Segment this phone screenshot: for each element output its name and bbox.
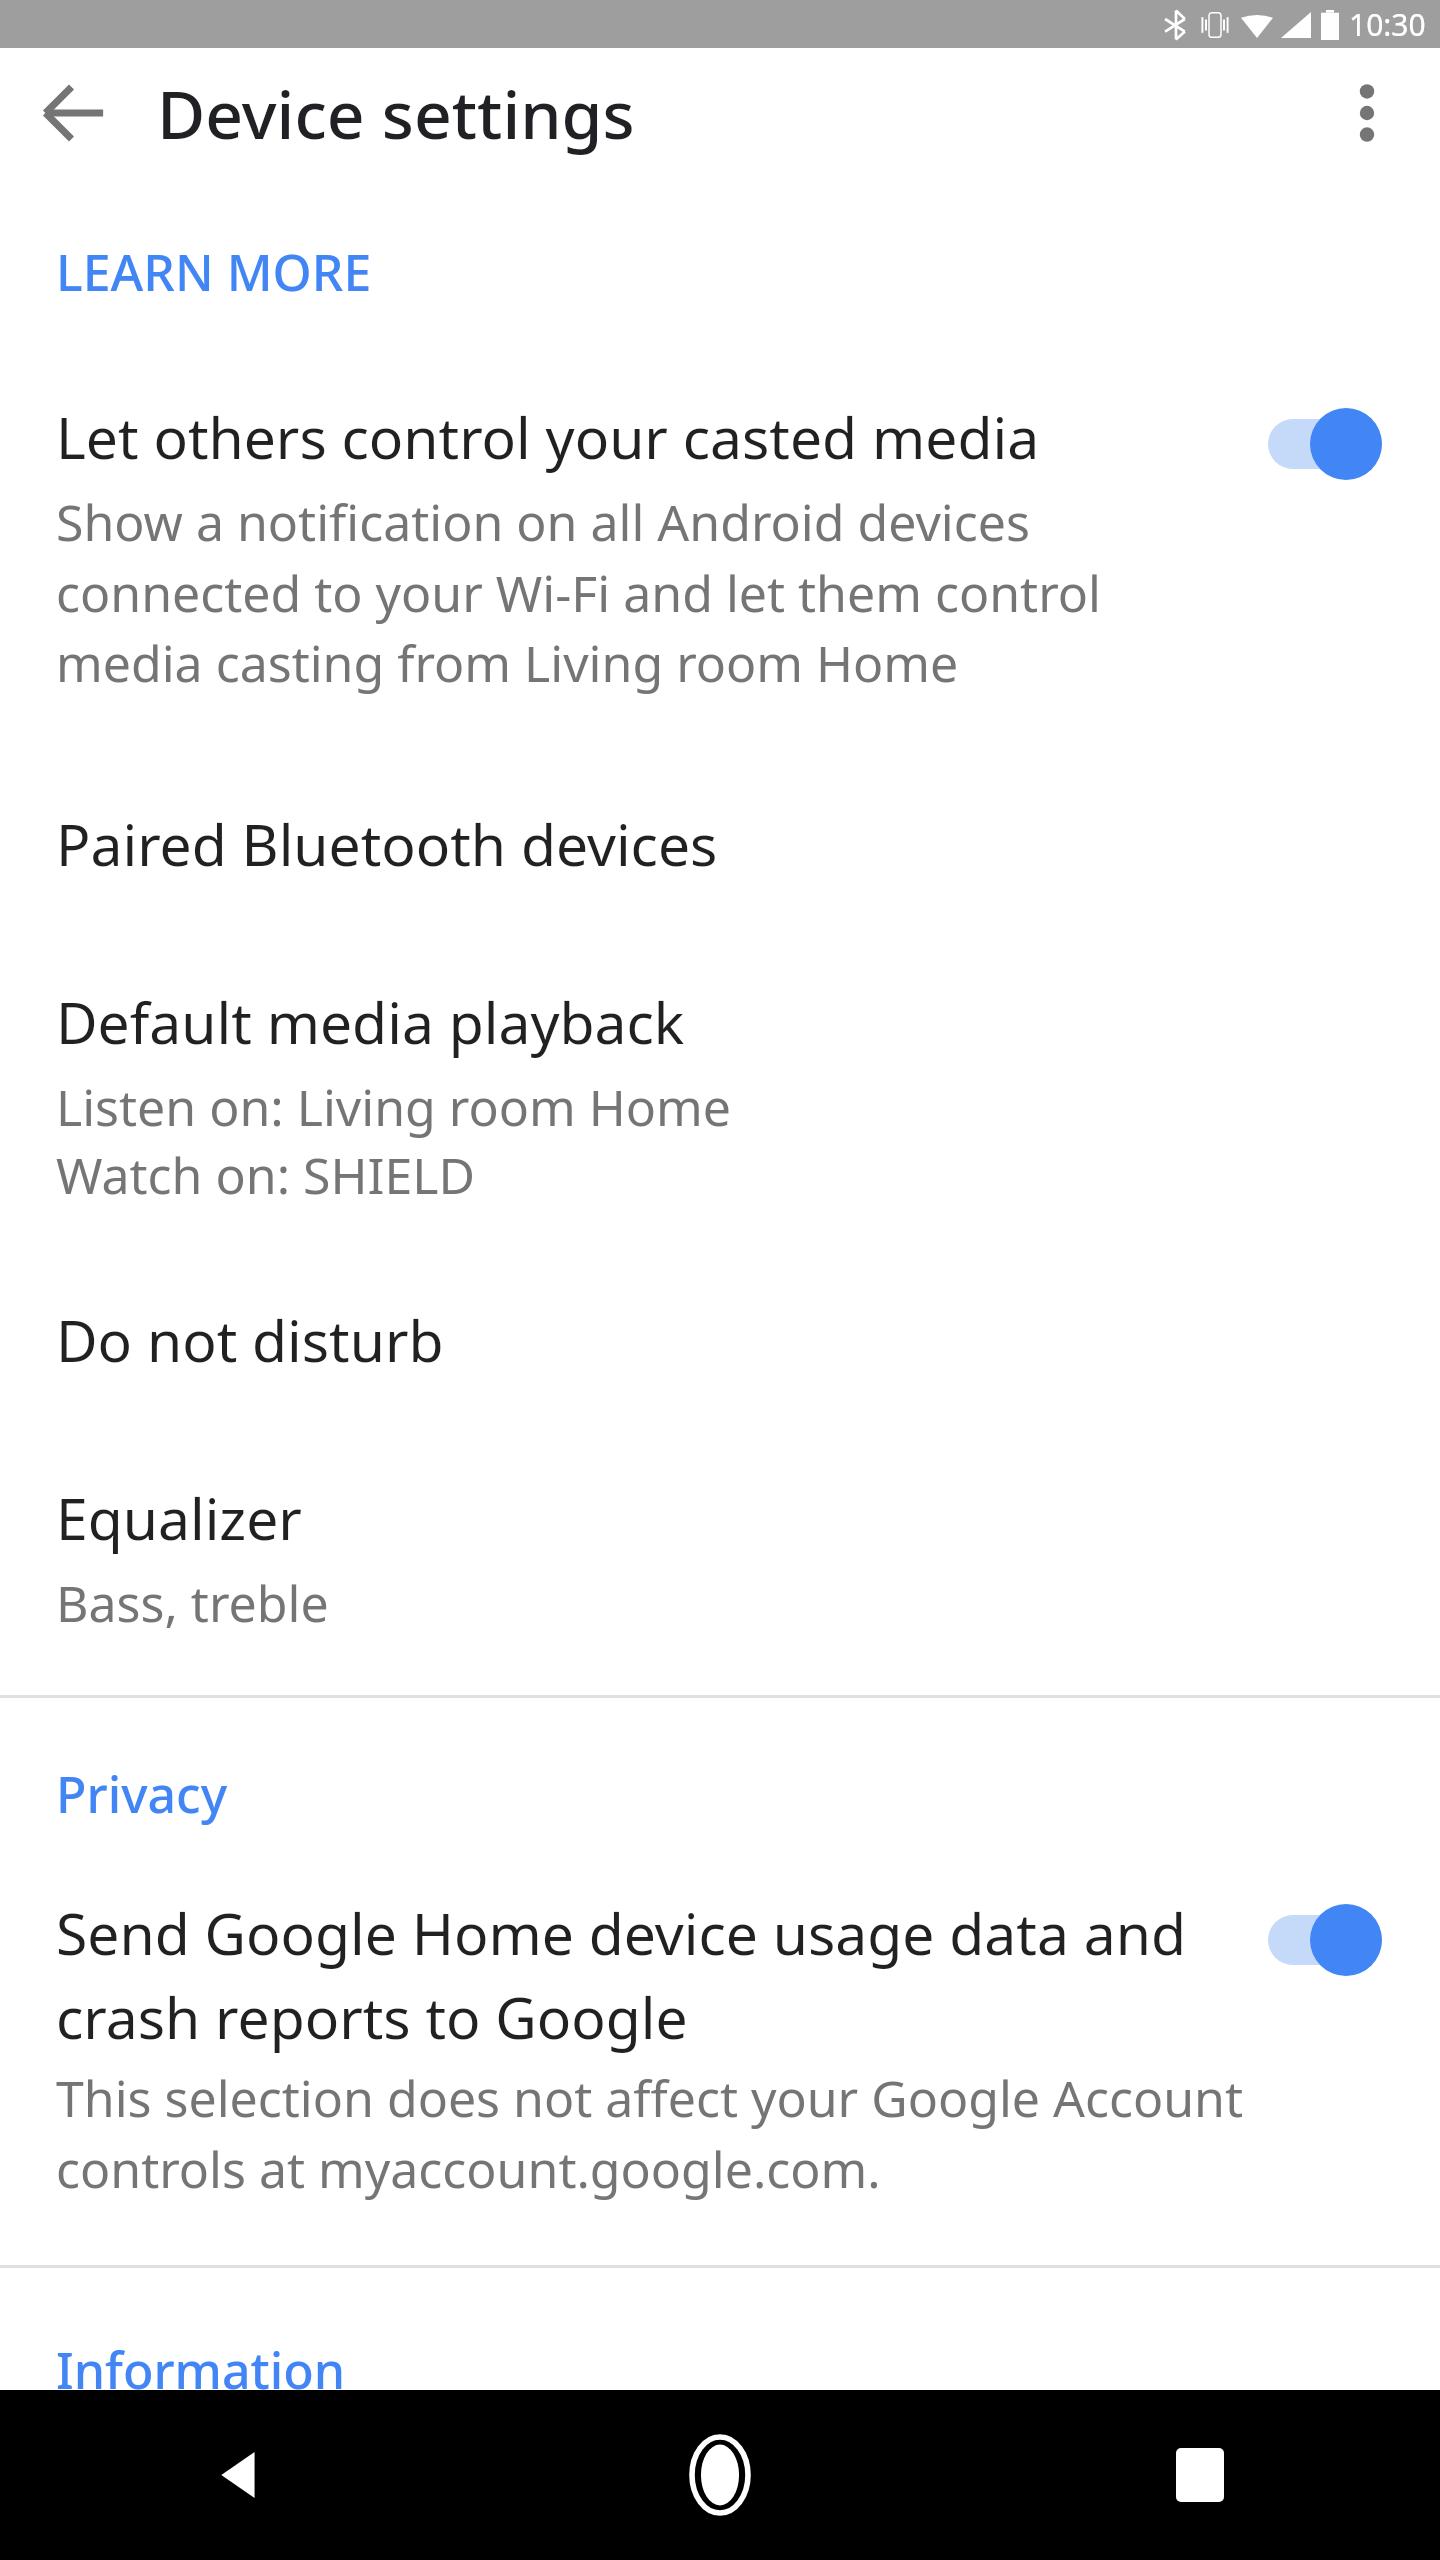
button[interactable]: Let others control your casted media: [0, 398, 1440, 697]
button[interactable]: Back: [0, 2390, 480, 2560]
staticText: Send Google Home device usage data and c…: [56, 1894, 1250, 2056]
button[interactable]: Paired Bluetooth devices: [0, 805, 1440, 883]
button[interactable]: Recent apps: [960, 2390, 1440, 2560]
staticText: Privacy: [56, 1760, 228, 1828]
staticText: Listen on: Living room Home: [56, 1073, 731, 1141]
staticText: LEARN MORE: [56, 238, 372, 306]
staticText: This selection does not affect your Goog…: [56, 2064, 1250, 2203]
staticText: Paired Bluetooth devices: [56, 805, 718, 883]
staticText: Equalizer: [56, 1479, 302, 1557]
button[interactable]: Send Google Home device usage data and c…: [0, 1894, 1440, 2203]
button[interactable]: LEARN MORE: [0, 228, 1440, 316]
staticText: Bass, treble: [56, 1569, 329, 1637]
button[interactable]: Toggle: [1266, 406, 1384, 482]
staticText: Show a notification on all Android devic…: [56, 488, 1250, 697]
staticText: Device settings: [157, 68, 635, 158]
button[interactable]: Do not disturb: [0, 1301, 1440, 1379]
staticText: Information: [56, 2336, 346, 2390]
staticText: 10:30: [1349, 4, 1426, 45]
button[interactable]: Toggle: [1266, 1902, 1384, 1978]
staticText: Watch on: SHIELD: [56, 1141, 475, 1209]
staticText: Let others control your casted media: [56, 398, 1040, 476]
button[interactable]: Home: [480, 2390, 960, 2560]
button[interactable]: Equalizer: [0, 1479, 1440, 1637]
button[interactable]: More options: [1322, 68, 1412, 158]
button[interactable]: Default media playback: [0, 983, 1440, 1209]
staticText: Do not disturb: [56, 1301, 444, 1379]
staticText: Default media playback: [56, 983, 685, 1061]
button[interactable]: Back: [26, 65, 122, 161]
